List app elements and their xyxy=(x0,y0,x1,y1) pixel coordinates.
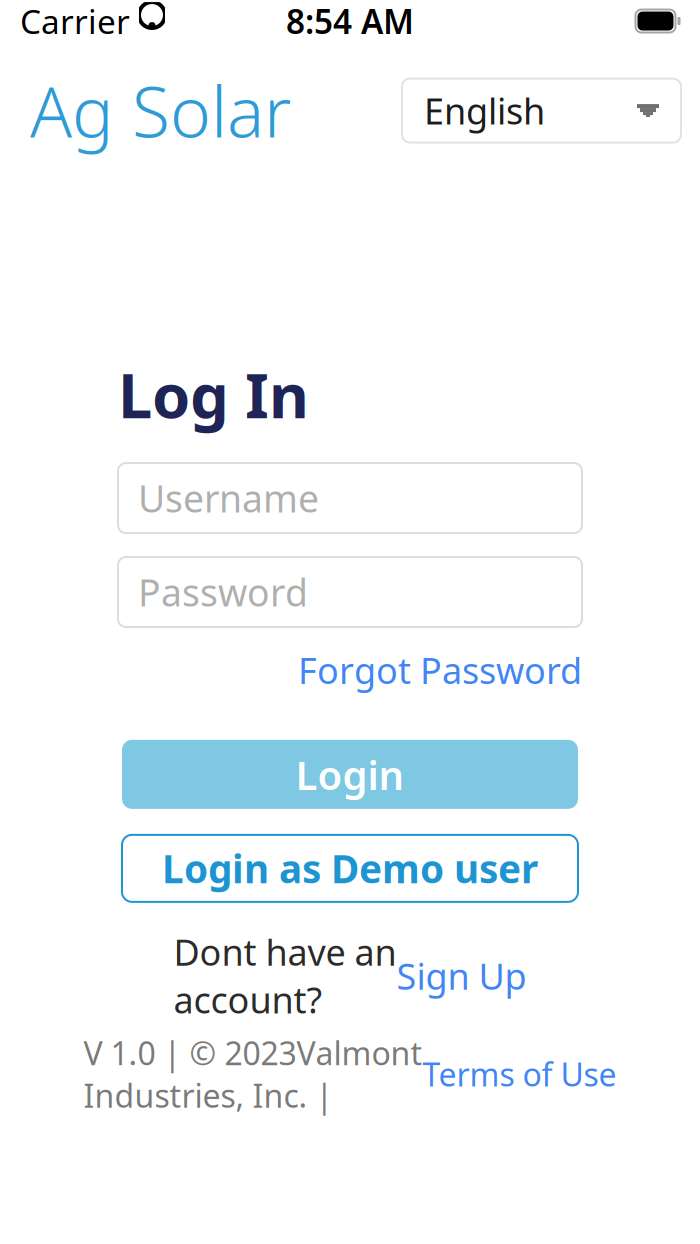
button[interactable]: Username xyxy=(118,463,582,533)
button[interactable]: Sign Up xyxy=(396,952,526,1000)
staticText: Ag Solar xyxy=(30,64,291,157)
button[interactable]: Terms of Use xyxy=(422,1053,616,1095)
staticText: Terms of Use xyxy=(422,1053,616,1095)
staticText: V 1.0 | © 2023Valmont Industries, Inc. | xyxy=(83,1031,422,1116)
staticText: Login as Demo user xyxy=(162,843,538,894)
staticText: Username xyxy=(138,473,319,523)
staticText: Carrier xyxy=(20,0,130,43)
button[interactable]: Forgot Password xyxy=(298,646,582,694)
staticText: Dont have an account? xyxy=(173,928,396,1023)
staticText: English xyxy=(424,87,545,134)
staticText: Log In xyxy=(118,354,309,435)
staticText: Sign Up xyxy=(396,952,526,1000)
button[interactable]: English xyxy=(402,79,681,143)
staticText: 8:54 AM xyxy=(286,0,414,43)
staticText: Password xyxy=(138,567,308,617)
button[interactable]: Login xyxy=(122,740,578,809)
staticText: Forgot Password xyxy=(298,646,582,694)
button[interactable]: Login as Demo user xyxy=(122,835,578,902)
button[interactable]: Password xyxy=(118,557,582,627)
staticText: Login xyxy=(295,748,404,801)
